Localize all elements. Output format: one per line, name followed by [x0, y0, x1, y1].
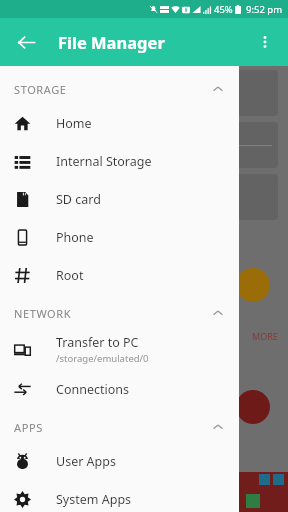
staticText: Home — [56, 115, 92, 132]
staticText: NETWORK — [14, 306, 72, 321]
staticText: Internal Storage — [56, 153, 152, 170]
button[interactable]: Connections — [0, 370, 239, 408]
staticText: File Manager — [58, 31, 165, 53]
staticText: Connections — [56, 381, 129, 398]
button[interactable]: User Apps — [0, 442, 239, 480]
staticText: Root — [56, 267, 84, 284]
button[interactable]: STORAGE — [0, 74, 239, 104]
staticText: MORE — [252, 330, 278, 342]
button[interactable]: System Apps — [0, 480, 239, 512]
button[interactable]: NETWORK — [0, 298, 239, 328]
button[interactable]: SD card — [0, 180, 239, 218]
staticText: Phone — [56, 229, 94, 246]
staticText: APPS — [14, 420, 43, 435]
staticText: /storage/emulated/0 — [56, 352, 149, 365]
button[interactable]: Transfer to PC — [0, 328, 239, 370]
staticText: User Apps — [56, 453, 116, 470]
button[interactable]: Home — [0, 104, 239, 142]
button[interactable]: Phone — [0, 218, 239, 256]
staticText: Transfer to PC — [56, 334, 139, 351]
button[interactable]: Root — [0, 256, 239, 294]
button[interactable]: Internal Storage — [0, 142, 239, 180]
button[interactable]: Back — [8, 24, 44, 60]
staticText: STORAGE — [14, 82, 67, 97]
staticText: SD card — [56, 191, 101, 208]
staticText: 45% — [214, 3, 233, 16]
button[interactable]: APPS — [0, 412, 239, 442]
button[interactable]: More options — [248, 25, 282, 59]
staticText: 9:52 pm — [246, 3, 283, 16]
staticText: System Apps — [56, 491, 132, 508]
